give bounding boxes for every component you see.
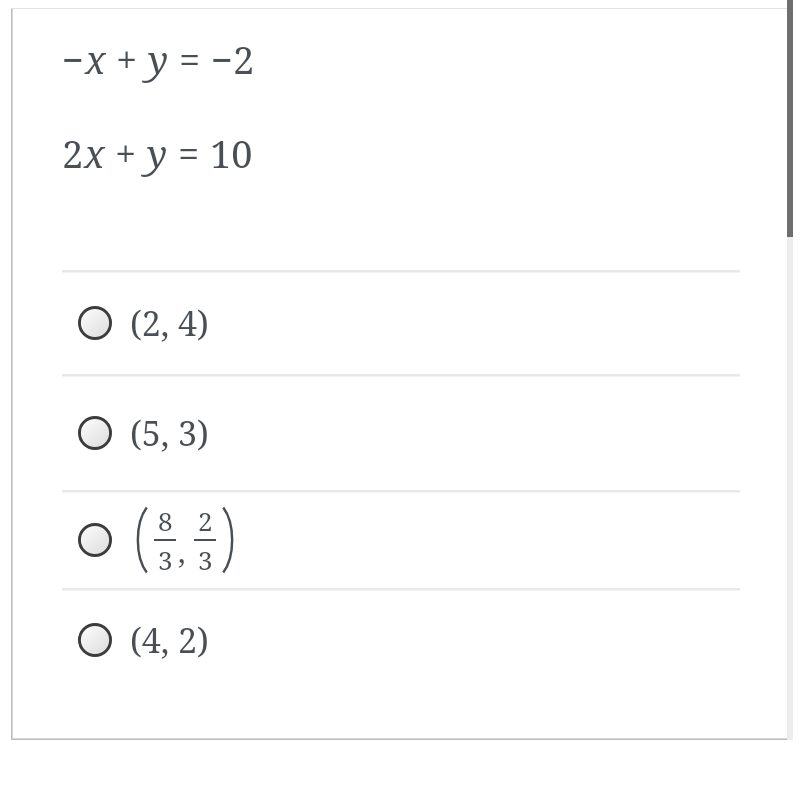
staticText: y <box>148 33 169 85</box>
staticText: 3 <box>158 542 173 577</box>
staticText: y <box>147 127 168 179</box>
button[interactable]: 8 <box>0 492 800 588</box>
staticText: = <box>169 33 211 85</box>
staticText: (5, 3) <box>130 410 209 456</box>
button[interactable]: (4, 2) <box>0 590 800 690</box>
button[interactable]: (5, 3) <box>0 376 800 490</box>
staticText: x <box>84 127 105 179</box>
staticText: − <box>62 33 85 85</box>
staticText: = <box>168 127 210 179</box>
staticText: , <box>178 531 186 572</box>
staticText: 3 <box>198 542 213 577</box>
staticText: (4, 2) <box>130 617 209 663</box>
staticText: −2 <box>211 33 255 85</box>
staticText: + <box>106 33 148 85</box>
staticText: 2 <box>62 127 84 179</box>
staticText: 10 <box>210 127 253 179</box>
staticText: 8 <box>158 503 173 538</box>
staticText: (2, 4) <box>130 300 209 346</box>
button[interactable]: (2, 4) <box>0 272 800 374</box>
staticText: x <box>85 33 106 85</box>
staticText: + <box>105 127 147 179</box>
staticText: 2 <box>198 503 213 538</box>
